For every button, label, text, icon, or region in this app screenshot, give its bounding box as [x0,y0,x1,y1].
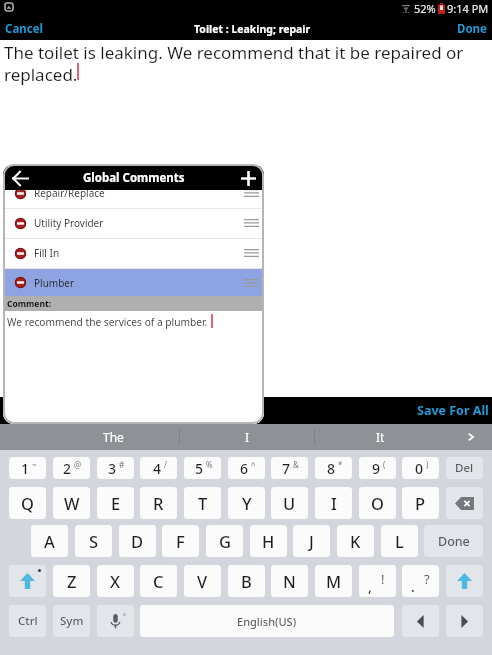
button[interactable]: N [271,565,308,597]
button[interactable]: S [75,525,112,557]
button[interactable]: Utility Provider [3,208,264,238]
button[interactable]: 4 [140,457,177,479]
button[interactable]: Plumber [3,268,264,297]
button[interactable]: M [315,565,352,597]
staticText: V [197,570,208,592]
staticText: Global Comments [83,170,185,186]
staticText: P [415,492,426,514]
staticText: W [64,492,80,514]
staticText: A [44,530,55,552]
button[interactable]: D [119,525,156,557]
button[interactable]: Fill In [3,238,264,268]
button[interactable]: Ctrl [9,605,46,637]
staticText: 2 [63,459,72,478]
button[interactable]: More suggestions [449,424,492,450]
button[interactable]: Y [228,487,265,519]
button[interactable]: P [402,487,439,519]
button[interactable]: English(US) [140,605,394,637]
button[interactable]: R [140,487,177,519]
staticText: / [164,459,167,470]
button[interactable]: J [293,525,330,557]
button[interactable]: It [315,424,449,450]
button[interactable]: . [402,565,439,597]
staticText: Sym [60,613,84,629]
staticText: Repair/Replace [34,186,105,200]
staticText: 3 [108,459,117,478]
button[interactable]: A [31,525,68,557]
button[interactable]: 5 [184,457,221,479]
staticText: @ [74,459,82,470]
button[interactable]: K [337,525,374,557]
button[interactable]: 9 [359,457,396,479]
staticText: Del [455,460,474,476]
button[interactable]: H [250,525,287,557]
button[interactable]: Backspace [446,487,483,519]
staticText: ? [424,570,430,588]
button[interactable]: E [97,487,134,519]
button[interactable]: V [184,565,221,597]
staticText: L [395,530,404,552]
button[interactable]: Shift [9,565,46,597]
button[interactable]: W [53,487,90,519]
button[interactable]: Add [241,171,256,186]
staticText: ! [381,570,385,588]
button[interactable]: Voice input [97,605,134,637]
button[interactable]: I [180,424,314,450]
button[interactable]: I [315,487,352,519]
button[interactable]: Done [457,21,487,37]
button[interactable]: Move cursor right [446,605,483,637]
staticText: S [89,530,99,552]
staticText: X [110,570,121,592]
button[interactable]: Sym [53,605,90,637]
button[interactable]: O [359,487,396,519]
staticText: H [262,530,275,552]
button[interactable]: Save For All [417,402,489,419]
staticText: 9 [372,459,381,478]
button[interactable]: Repair/Replace [3,178,264,208]
staticText: E [111,492,121,514]
staticText: We recommend the services of a plumber. [7,315,208,329]
button[interactable]: Q [9,487,46,519]
button[interactable]: Done [424,525,483,557]
button[interactable]: Del [446,457,483,479]
staticText: & [293,459,299,470]
button[interactable]: Z [53,565,90,597]
staticText: ) [426,459,429,470]
button[interactable]: 3 [97,457,134,479]
button[interactable]: 7 [271,457,308,479]
button[interactable]: X [97,565,134,597]
staticText: G [219,530,231,552]
staticText: Y [242,492,252,514]
staticText: U [283,492,296,514]
button[interactable]: G [206,525,243,557]
staticText: J [309,530,314,552]
button[interactable]: , [359,565,396,597]
staticText: 6 [240,459,249,478]
button[interactable]: 6 [228,457,265,479]
button[interactable]: B [228,565,265,597]
staticText: C [153,570,164,592]
staticText: # [119,459,125,470]
staticText: B [241,570,252,592]
button[interactable]: T [184,487,221,519]
button[interactable]: 1 [9,457,46,479]
button[interactable]: Back [12,171,28,186]
staticText: Plumber [34,276,75,290]
staticText: * [338,459,343,470]
button[interactable]: 0 [402,457,439,479]
button[interactable]: 8 [315,457,352,479]
staticText: 1 [21,459,30,478]
button[interactable]: Move cursor left [402,605,439,637]
button[interactable]: L [381,525,418,557]
staticText: ~ [32,459,37,470]
button[interactable]: 2 [53,457,90,479]
button[interactable]: F [162,525,199,557]
staticText: Ctrl [18,613,38,629]
staticText: Done [457,21,487,37]
button[interactable]: U [271,487,308,519]
staticText: I [331,492,337,514]
button[interactable]: C [140,565,177,597]
button[interactable]: Cancel [5,21,43,37]
button[interactable]: The [0,424,179,450]
button[interactable]: Shift [446,565,483,597]
